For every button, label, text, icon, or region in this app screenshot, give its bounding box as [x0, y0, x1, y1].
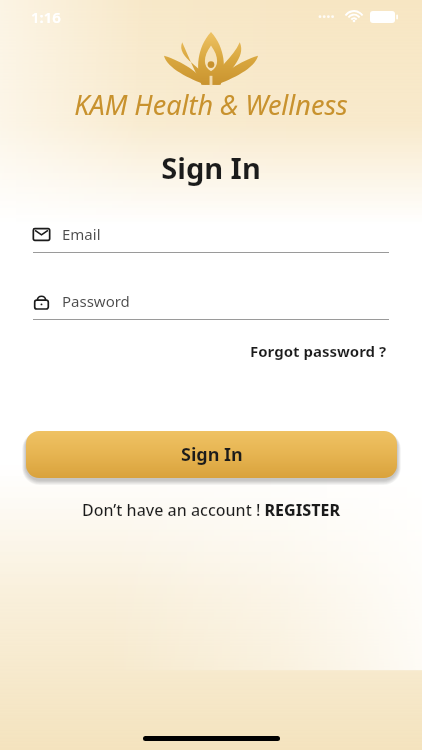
staticText: Sign In	[0, 148, 422, 187]
button[interactable]: Don’t have an account ! REGISTER	[76, 496, 347, 524]
staticText: 1:16	[31, 7, 61, 27]
button[interactable]: Password	[33, 291, 389, 320]
staticText: Forgot password ?	[250, 341, 387, 361]
button[interactable]: Email	[33, 224, 389, 253]
staticText: Don’t have an account ! REGISTER	[82, 499, 341, 521]
staticText: KAM Health & Wellness	[0, 86, 422, 123]
staticText: Sign In	[181, 442, 243, 467]
staticText: Password	[62, 291, 130, 311]
staticText: Email	[62, 224, 101, 244]
button[interactable]: Sign In	[26, 431, 397, 478]
button[interactable]: Forgot password ?	[248, 338, 389, 364]
